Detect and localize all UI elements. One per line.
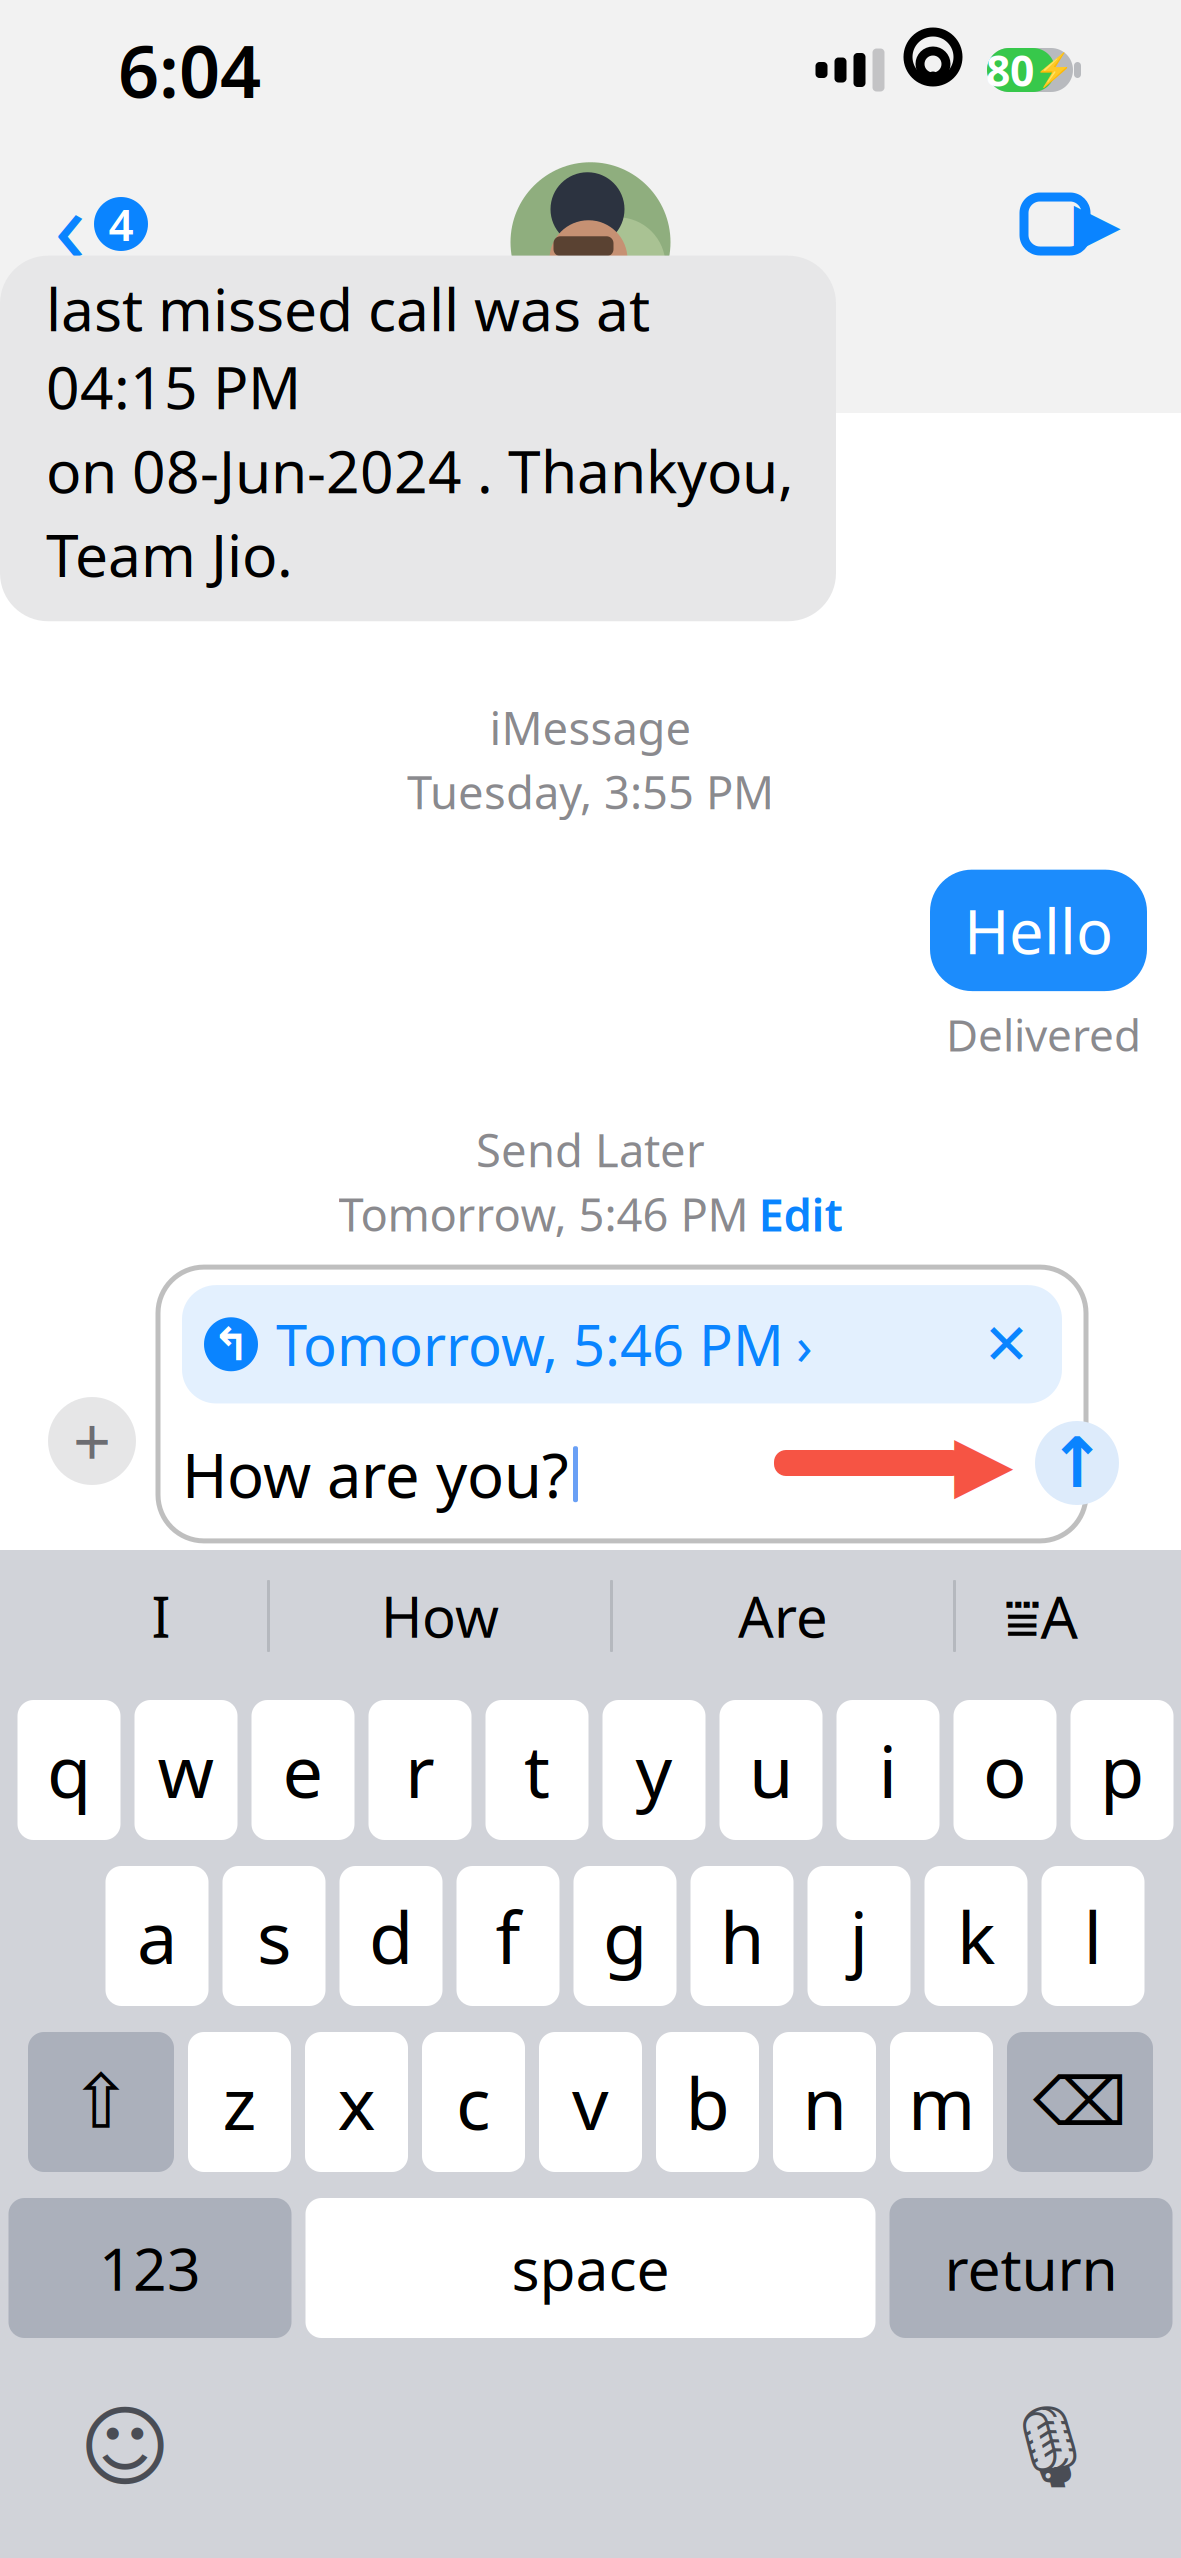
staticText: k: [957, 1888, 995, 1984]
button[interactable]: l: [1041, 1866, 1144, 2006]
staticText: on 08-Jun-2024 . Thankyou,: [46, 431, 794, 509]
staticText: y: [635, 1722, 672, 1818]
button[interactable]: FaceTime video call: [1017, 188, 1121, 260]
staticText: ✕: [983, 1312, 1030, 1376]
staticText: 6:04: [118, 22, 261, 118]
staticText: z: [222, 2054, 256, 2150]
button[interactable]: Are: [613, 1561, 953, 1671]
staticText: ⚡: [1034, 52, 1074, 88]
staticText: r: [405, 1722, 435, 1818]
staticText: How are you?: [182, 1433, 569, 1515]
button[interactable]: m: [890, 2032, 993, 2172]
button[interactable]: u: [719, 1700, 822, 1840]
button[interactable]: e: [251, 1700, 354, 1840]
staticText: Edit: [758, 1184, 842, 1244]
staticText: return: [944, 2229, 1117, 2307]
staticText: ⇧: [69, 2060, 132, 2144]
staticText: ☺: [79, 2397, 171, 2497]
button[interactable]: 123: [8, 2198, 291, 2338]
button[interactable]: Emoji: [70, 2392, 180, 2502]
staticText: l: [1083, 1888, 1102, 1984]
staticText: b: [685, 2054, 729, 2150]
staticText: s: [257, 1888, 291, 1984]
staticText: m: [908, 2054, 975, 2150]
button[interactable]: t: [485, 1700, 588, 1840]
button[interactable]: Delete: [1007, 2032, 1153, 2172]
staticText: I: [151, 1579, 170, 1653]
staticText: i: [878, 1722, 897, 1818]
staticText: a: [137, 1888, 177, 1984]
staticText: ⩸A: [1004, 1577, 1077, 1655]
button[interactable]: s: [222, 1866, 325, 2006]
staticText: space: [511, 2229, 669, 2307]
button[interactable]: return: [889, 2198, 1172, 2338]
button[interactable]: Back, 4 unread: [44, 174, 158, 274]
staticText: 4: [108, 195, 133, 253]
button[interactable]: space: [305, 2198, 875, 2338]
button[interactable]: j: [807, 1866, 910, 2006]
staticText: o: [983, 1722, 1027, 1818]
staticText: Are: [738, 1579, 828, 1653]
staticText: p: [1100, 1722, 1144, 1818]
staticText: iMessage: [489, 697, 691, 757]
button[interactable]: Send: [1035, 1421, 1119, 1505]
button[interactable]: z: [188, 2032, 291, 2172]
staticText: How: [381, 1579, 499, 1653]
button[interactable]: ↰: [182, 1285, 1062, 1403]
staticText: ▶: [1073, 189, 1120, 259]
staticText: ↑: [1048, 1424, 1106, 1502]
staticText: ‹: [54, 155, 86, 293]
button[interactable]: o: [953, 1700, 1056, 1840]
staticText: Hello: [960, 1306, 1109, 1387]
button[interactable]: w: [134, 1700, 237, 1840]
button[interactable]: r: [368, 1700, 471, 1840]
staticText: Delivered: [946, 1005, 1141, 1063]
button[interactable]: f: [456, 1866, 559, 2006]
staticText: Tomorrow, 5:46 PM: [338, 1184, 748, 1244]
staticText: 🎙: [999, 2401, 1101, 2493]
button[interactable]: q: [17, 1700, 120, 1840]
button[interactable]: Text formatting: [956, 1561, 1126, 1671]
staticText: +: [73, 1397, 111, 1485]
staticText: v: [572, 2054, 609, 2150]
staticText: x: [337, 2054, 375, 2150]
button[interactable]: y: [602, 1700, 705, 1840]
button[interactable]: p: [1070, 1700, 1173, 1840]
button[interactable]: k: [924, 1866, 1027, 2006]
button[interactable]: h: [690, 1866, 793, 2006]
button[interactable]: How: [270, 1561, 610, 1671]
staticText: ▶: [954, 1419, 1013, 1507]
button[interactable]: a: [105, 1866, 208, 2006]
button[interactable]: n: [773, 2032, 876, 2172]
button[interactable]: b: [656, 2032, 759, 2172]
staticText: ↰: [212, 1318, 250, 1370]
staticText: Tuesday, 3:55 PM: [407, 761, 774, 822]
staticText: e: [282, 1722, 323, 1818]
button[interactable]: Edit: [758, 1184, 842, 1244]
staticText: Anshul: [500, 330, 659, 396]
staticText: Team Jio.: [46, 515, 293, 593]
button[interactable]: c: [422, 2032, 525, 2172]
button[interactable]: Shift: [28, 2032, 174, 2172]
staticText: w: [157, 1722, 214, 1818]
button[interactable]: Dictation: [995, 2392, 1105, 2502]
button[interactable]: Add attachment: [48, 1397, 136, 1485]
staticText: t: [524, 1722, 550, 1818]
staticText: c: [456, 2054, 491, 2150]
staticText: Send Later: [476, 1119, 705, 1180]
staticText: 123: [99, 2229, 201, 2307]
button[interactable]: g: [573, 1866, 676, 2006]
button[interactable]: Anshul: [500, 330, 681, 396]
button[interactable]: d: [339, 1866, 442, 2006]
button[interactable]: I: [55, 1561, 267, 1671]
button[interactable]: x: [305, 2032, 408, 2172]
staticText: ⌫: [1033, 2064, 1127, 2140]
button[interactable]: i: [836, 1700, 939, 1840]
staticText: d: [369, 1888, 413, 1984]
staticText: 80: [986, 42, 1034, 98]
staticText: Tomorrow, 5:46 PM: [276, 1307, 784, 1381]
staticText: Hello: [964, 890, 1113, 971]
button[interactable]: v: [539, 2032, 642, 2172]
staticText: n: [802, 2054, 846, 2150]
